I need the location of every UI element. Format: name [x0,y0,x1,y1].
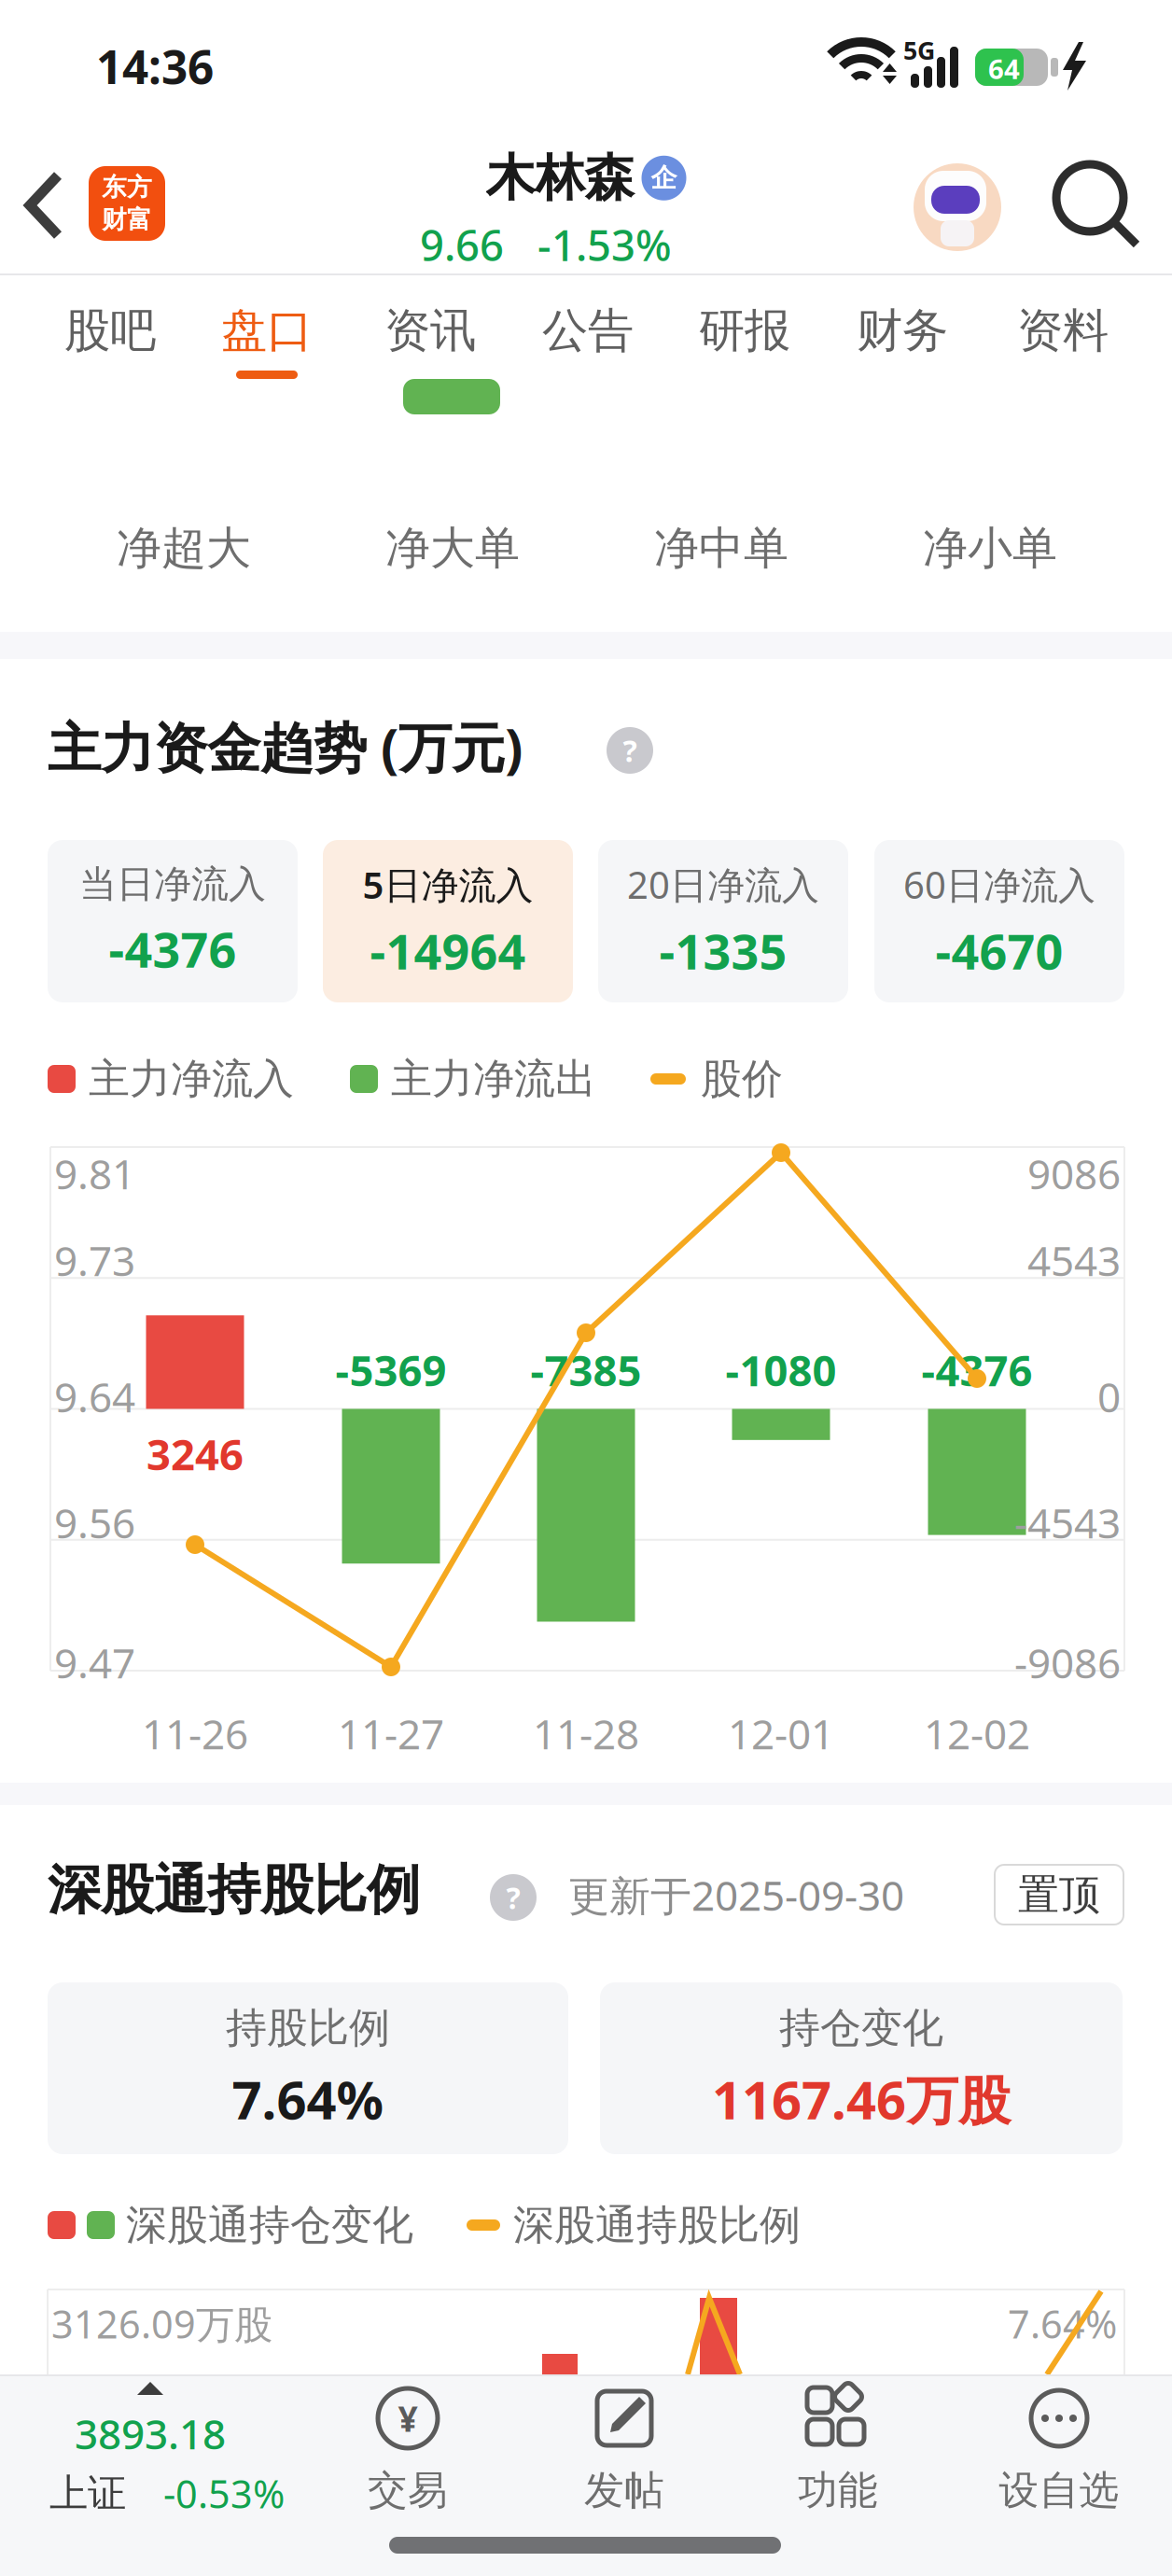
staticText: 上证 [49,2470,126,2517]
staticText: 1167.46万股 [712,2064,1011,2134]
staticText: 主力资金趋势 (万元) [48,711,523,782]
staticText: 7.64% [1008,2298,1117,2349]
staticText: 3246 [146,1426,244,1482]
staticText: 深股通持仓变化 [126,2200,413,2250]
staticText: 11-28 [533,1706,639,1761]
staticText: 交易 [368,2466,448,2515]
staticText: 9.81 [54,1146,135,1201]
staticText: 深股通持股比例 [513,2200,801,2250]
staticText: 64 [988,50,1020,87]
button[interactable]: 帮助 [607,727,653,774]
staticText: -1080 [726,1342,837,1398]
staticText: 9086 [1027,1146,1121,1201]
staticText: 净超大 [117,521,251,576]
button[interactable]: 5日净流入 [323,840,573,1002]
button[interactable]: 设自选 [975,2386,1143,2515]
button[interactable]: 搜索 [1049,157,1142,250]
staticText: -0.53% [163,2468,285,2519]
staticText: 4543 [1027,1233,1121,1287]
staticText: ¥ [398,2395,418,2441]
staticText: 净大单 [385,521,520,576]
button[interactable]: 持仓变化 [600,1982,1123,2154]
staticText: 5日净流入 [363,860,533,909]
staticText: 持仓变化 [779,2003,943,2053]
staticText: 12-01 [728,1706,834,1761]
staticText: 股价 [701,1054,783,1104]
staticText: 企 [651,162,677,194]
staticText: -4376 [109,917,237,981]
button[interactable]: 持股比例 [48,1982,568,2154]
button[interactable]: 发帖 [540,2386,708,2515]
staticText: 主力净流入 [89,1054,294,1104]
staticText: 股吧 [64,302,156,359]
button[interactable]: 60日净流入 [874,840,1124,1002]
button[interactable]: 功能 [754,2386,922,2515]
staticText: 财富 [102,204,152,235]
button[interactable]: ¥ [324,2386,492,2515]
staticText: 12-02 [924,1706,1030,1761]
button[interactable]: 盘口 [197,302,337,383]
staticText: 东方 [102,172,152,203]
staticText: -1335 [659,918,787,983]
staticText: 20日净流入 [627,860,819,909]
staticText: -4670 [935,918,1063,983]
staticText: 公告 [542,302,634,359]
staticText: 发帖 [584,2466,664,2515]
button[interactable]: 智能助手 [914,163,1001,251]
staticText: 功能 [798,2466,878,2515]
staticText: 3126.09万股 [51,2298,272,2349]
staticText: 11-27 [338,1706,444,1761]
staticText: 7.64% [232,2064,384,2134]
button[interactable]: 帮助 [490,1874,537,1921]
staticText: 研报 [699,302,790,359]
button[interactable]: 置顶 [995,1865,1123,1925]
staticText: -9086 [1014,1635,1121,1690]
staticText: 资料 [1017,302,1109,359]
staticText: -5369 [335,1342,446,1398]
button[interactable]: 20日净流入 [598,840,848,1002]
staticText: 主力净流出 [391,1054,596,1104]
staticText: 5G [903,34,935,67]
staticText: 持股比例 [226,2003,390,2053]
staticText: 9.47 [54,1635,135,1690]
staticText: -4376 [921,1342,1032,1398]
staticText: 更新于2025-09-30 [568,1868,904,1922]
button[interactable]: 东方财富 [89,166,165,241]
staticText: 0 [1097,1369,1121,1424]
button[interactable]: 当日净流入 [48,840,298,1002]
staticText: -4543 [1014,1495,1121,1550]
staticText: ? [506,1878,520,1917]
staticText: 60日净流入 [903,860,1095,909]
staticText: 14:36 [96,35,214,97]
staticText: ? [623,731,637,770]
button[interactable]: 返回 [19,163,75,247]
button[interactable]: 财务 [832,302,972,383]
button[interactable]: 股吧 [40,302,180,383]
staticText: 资讯 [384,302,476,359]
staticText: 盘口 [221,302,313,359]
button[interactable]: 研报 [675,302,815,383]
staticText: 3893.18 [75,2406,226,2461]
button[interactable]: 3893.18 [0,2378,317,2555]
staticText: 9.73 [54,1233,135,1287]
staticText: 11-26 [142,1706,248,1761]
staticText: 9.66 -1.53% [420,217,672,273]
button[interactable]: 资讯 [360,302,500,383]
button[interactable]: 资料 [993,302,1133,383]
staticText: 设自选 [999,2466,1119,2515]
staticText: 净中单 [654,521,788,576]
button[interactable]: 公告 [518,302,658,383]
staticText: 深股通持股比例 [48,1857,420,1923]
staticText: 9.64 [54,1369,135,1424]
staticText: 9.56 [54,1495,135,1550]
staticText: 木林森 [486,147,634,209]
staticText: 净小单 [923,521,1057,576]
staticText: -7385 [530,1342,642,1398]
staticText: 当日净流入 [79,861,266,907]
staticText: -14964 [370,918,526,983]
staticText: 置顶 [1018,1869,1100,1920]
staticText: 财务 [857,302,948,359]
